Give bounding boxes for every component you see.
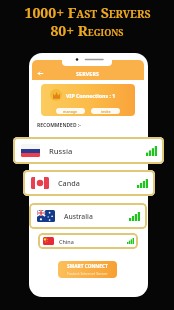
button[interactable]: invite — [91, 108, 120, 114]
button[interactable]: Back — [35, 68, 46, 79]
button[interactable]: Australia — [29, 203, 147, 229]
button[interactable]: SMART CONNECT — [58, 261, 117, 278]
button[interactable]: Russia — [13, 137, 164, 164]
staticText: Fastest Internet Server — [67, 271, 108, 276]
button[interactable]: manage — [56, 108, 85, 114]
staticText: Canda — [58, 178, 80, 188]
staticText: Australia — [64, 212, 93, 221]
staticText: manage — [63, 109, 78, 114]
staticText: China — [59, 238, 74, 245]
staticText: VIP Connections : 1 — [66, 92, 116, 99]
button[interactable]: China — [38, 233, 138, 249]
staticText: SERVERS — [76, 70, 100, 77]
staticText: 80+ REGIONS — [50, 21, 124, 40]
button[interactable]: VIP Connections : 1 — [41, 84, 135, 116]
button[interactable]: Canda — [23, 170, 155, 196]
staticText: 1000+ FAST SERVERS — [24, 3, 151, 22]
staticText: invite — [101, 109, 111, 114]
staticText: RECOMMENDED :- — [37, 122, 81, 129]
staticText: Russia — [49, 146, 73, 156]
staticText: SMART CONNECT — [67, 263, 108, 270]
button[interactable] — [32, 60, 144, 80]
